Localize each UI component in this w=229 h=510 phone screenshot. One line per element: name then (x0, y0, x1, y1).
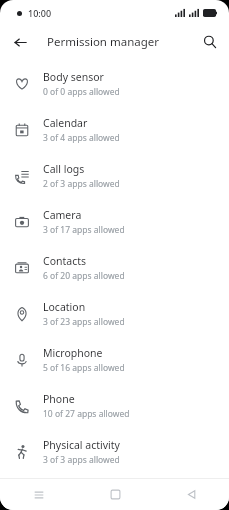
staticText: 2 of 3 apps allowed (43, 178, 120, 190)
staticText: 3 of 17 apps allowed (43, 224, 125, 236)
staticText: Phone (43, 392, 75, 406)
button[interactable]: Body sensor (0, 61, 229, 107)
staticText: Calendar (43, 116, 88, 130)
staticText: 3 of 23 apps allowed (43, 316, 125, 328)
button[interactable]: Recent apps (0, 479, 77, 510)
staticText: 6 of 20 apps allowed (43, 270, 125, 282)
button[interactable]: Location (0, 291, 229, 337)
staticText: Location (43, 300, 86, 314)
staticText: Physical activity (43, 438, 120, 452)
button[interactable]: Physical activity (0, 429, 229, 475)
button[interactable]: Back (7, 29, 33, 55)
staticText: 0 of 0 apps allowed (43, 86, 120, 98)
staticText: 3 of 4 apps allowed (43, 132, 120, 144)
staticText: 5 of 16 apps allowed (43, 362, 125, 374)
button[interactable]: Contacts (0, 245, 229, 291)
staticText: Microphone (43, 346, 103, 360)
button[interactable]: Calendar (0, 107, 229, 153)
staticText: Call logs (43, 162, 85, 176)
button[interactable]: Call logs (0, 153, 229, 199)
staticText: 3 of 3 apps allowed (43, 454, 120, 466)
staticText: 10 of 27 apps allowed (43, 408, 130, 420)
button[interactable]: Phone (0, 383, 229, 429)
staticText: Camera (43, 208, 82, 222)
button[interactable]: Camera (0, 199, 229, 245)
button[interactable]: Home (77, 479, 153, 510)
staticText: Body sensor (43, 70, 104, 84)
button[interactable]: Back (153, 479, 229, 510)
staticText: 10:00 (28, 7, 52, 19)
button[interactable]: Search (197, 29, 223, 55)
staticText: Contacts (43, 254, 87, 268)
staticText: Permission manager (47, 34, 160, 50)
button[interactable]: Microphone (0, 337, 229, 383)
